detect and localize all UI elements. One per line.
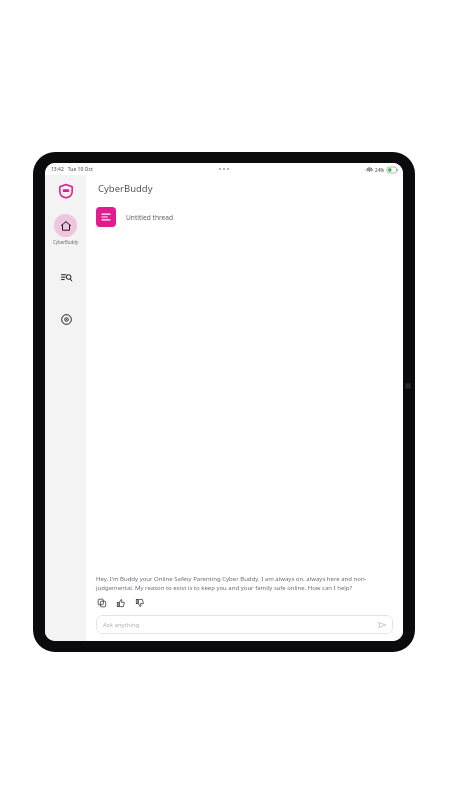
button[interactable]: Search — [56, 267, 76, 287]
button[interactable]: Send — [376, 619, 387, 630]
button[interactable]: Thumbs down — [134, 597, 145, 608]
staticText: 13:42 Tue 10 Oct — [51, 166, 93, 173]
staticText: Untitled thread — [126, 213, 174, 222]
button[interactable]: Thumbs up — [115, 597, 126, 608]
button[interactable]: Untitled thread — [96, 207, 393, 227]
staticText: CyberBuddy — [98, 182, 153, 195]
staticText: CyberBuddy — [53, 239, 79, 245]
button[interactable]: Copy — [96, 597, 107, 608]
staticText: Hey, I'm Buddy your Online Safety Parent… — [96, 575, 389, 592]
staticText: Ask anything — [103, 621, 140, 629]
button[interactable]: CyberBuddy logo — [57, 182, 75, 200]
button[interactable]: Ask anything — [96, 615, 393, 634]
staticText: 24% — [375, 167, 385, 173]
button[interactable]: Help — [56, 309, 76, 329]
button[interactable]: CyberBuddy — [45, 214, 86, 245]
